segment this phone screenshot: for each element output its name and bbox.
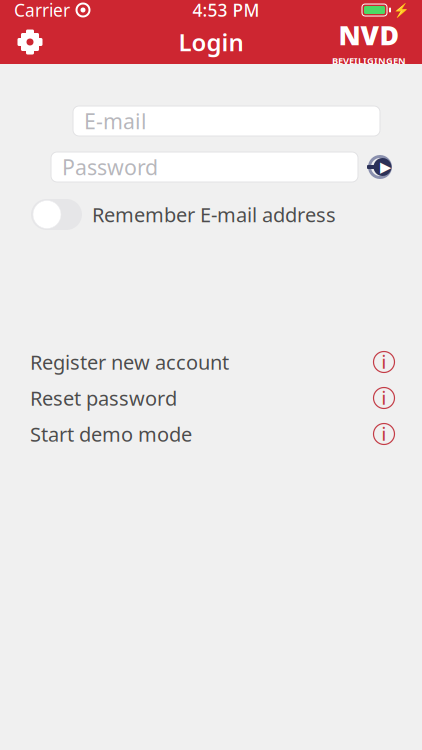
- staticText: Password: [62, 153, 158, 181]
- staticText: NVD: [338, 17, 399, 52]
- button[interactable]: Settings: [8, 20, 52, 64]
- staticText: Carrier: [14, 0, 70, 21]
- staticText: i: [381, 422, 386, 445]
- staticText: i: [381, 386, 386, 409]
- button[interactable]: NVD Beveiligingen: [324, 20, 414, 64]
- staticText: Login: [178, 26, 243, 58]
- button[interactable]: Reset password: [0, 380, 422, 416]
- staticText: 4:53 PM: [192, 0, 259, 21]
- staticText: ▶: [380, 159, 391, 175]
- button[interactable]: Log in: [358, 147, 402, 187]
- staticText: Start demo mode: [30, 421, 192, 447]
- staticText: BEVEILIGINGEN: [332, 54, 406, 67]
- staticText: i: [381, 350, 386, 373]
- staticText: Register new account: [30, 349, 229, 375]
- staticText: Reset password: [30, 385, 177, 411]
- button[interactable]: Register new account: [0, 344, 422, 380]
- staticText: Remember E-mail address: [92, 201, 336, 228]
- staticText: E-mail: [84, 107, 147, 135]
- staticText: ⚡: [393, 2, 410, 18]
- button[interactable]: Remember E-mail address: [31, 199, 336, 230]
- button[interactable]: Start demo mode: [0, 416, 422, 452]
